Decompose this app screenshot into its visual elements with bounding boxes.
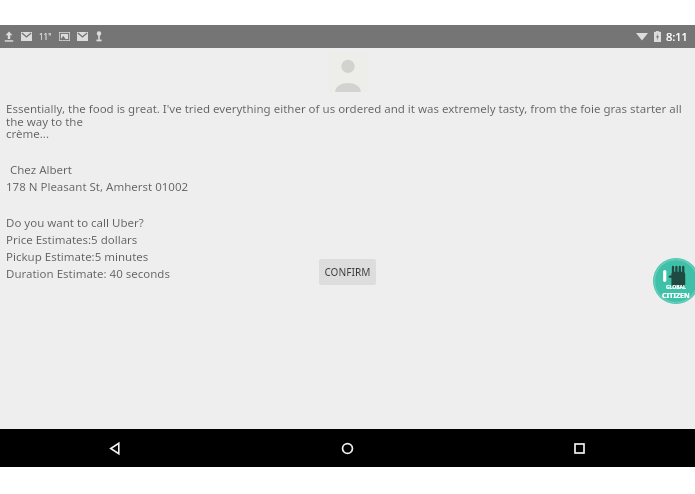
staticText: Chez Albert (10, 162, 72, 178)
staticText: 178 N Pleasant St, Amherst 01002 (6, 179, 189, 195)
staticText: CONFIRM (324, 265, 371, 279)
staticText: CITIZEN (662, 291, 690, 301)
button[interactable]: Recent apps (463, 429, 695, 467)
staticText: 8:11 (666, 29, 688, 44)
staticText: Do you want to call Uber? (6, 215, 144, 231)
button[interactable]: Back (0, 429, 231, 467)
button[interactable]: Profile photo (329, 52, 367, 92)
button[interactable]: CONFIRM (319, 259, 376, 285)
staticText: Pickup Estimate:5 minutes (6, 249, 149, 265)
staticText: Duration Estimate: 40 seconds (6, 266, 170, 282)
staticText: Price Estimates:5 dollars (6, 232, 138, 248)
button[interactable]: Home (231, 429, 463, 467)
staticText: GLOBAL (666, 284, 686, 291)
button[interactable]: Global Citizen (653, 258, 695, 304)
staticText: Essentially, the food is great. I've tri… (6, 101, 691, 141)
staticText: 11" (39, 31, 52, 42)
